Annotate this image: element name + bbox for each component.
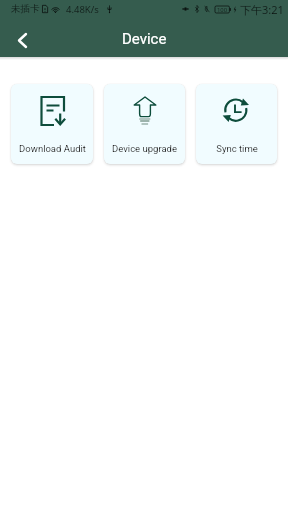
staticText: Device upgrade [112, 143, 177, 154]
staticText: 未插卡 [11, 3, 40, 15]
staticText: 下午3:21 [240, 2, 284, 17]
staticText: Sync time [216, 143, 258, 154]
button[interactable]: Download Audit [11, 84, 93, 164]
staticText: Download Audit [19, 143, 86, 154]
button[interactable]: Back [0, 18, 44, 62]
staticText: 4.48K/s [66, 3, 99, 16]
staticText: Device [122, 30, 167, 48]
button[interactable]: Device upgrade [104, 84, 185, 164]
button[interactable]: Sync time [196, 84, 277, 164]
staticText: 100 [217, 6, 228, 13]
